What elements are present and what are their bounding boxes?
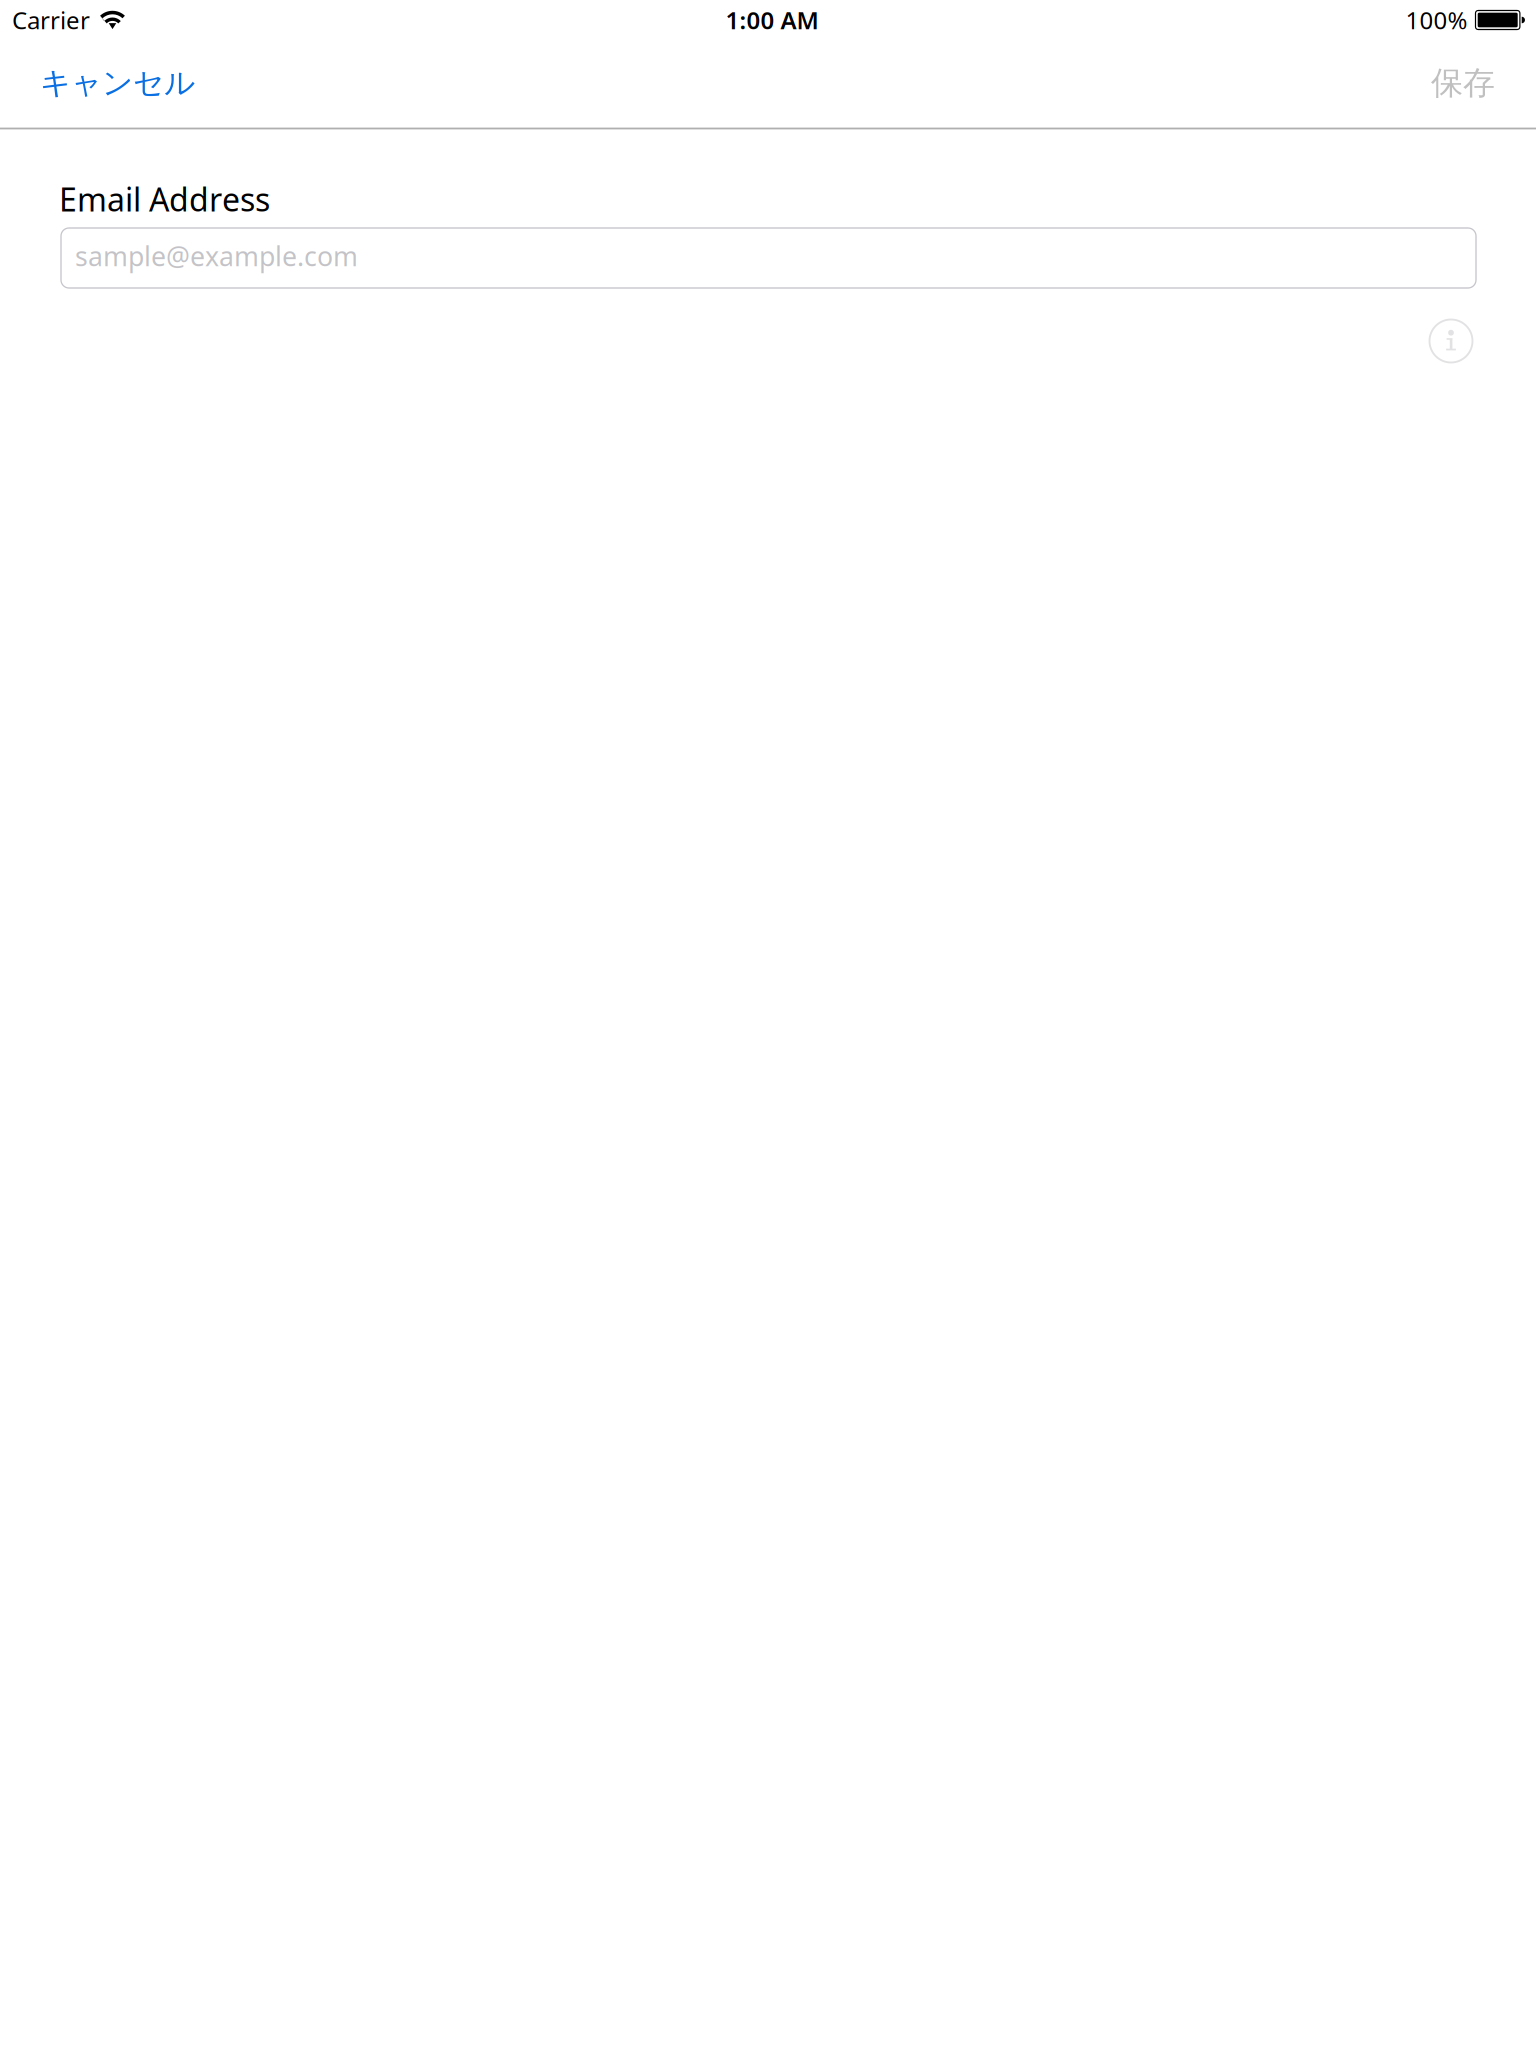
button[interactable]: Email Address <box>61 228 1476 288</box>
staticText: 保存 <box>1431 63 1495 103</box>
button[interactable]: 保存 <box>1411 40 1515 128</box>
staticText: Carrier <box>12 4 90 36</box>
staticText: Email Address <box>59 178 270 220</box>
button[interactable]: More information <box>1429 319 1473 363</box>
staticText: 100% <box>1405 4 1467 36</box>
button[interactable]: キャンセル <box>18 40 217 128</box>
staticText: 1:00 AM <box>725 4 818 36</box>
staticText: sample@example.com <box>75 238 358 274</box>
staticText: キャンセル <box>40 64 195 102</box>
